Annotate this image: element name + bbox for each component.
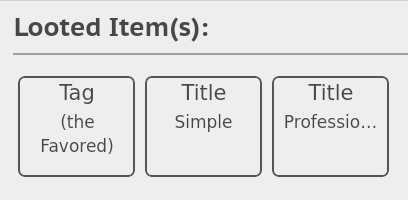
staticText: Favored) xyxy=(40,136,114,156)
button[interactable]: Title xyxy=(272,76,389,177)
staticText: Title xyxy=(181,81,227,105)
staticText: (the xyxy=(60,112,95,132)
staticText: Tag xyxy=(59,81,95,105)
staticText: Title xyxy=(308,81,354,105)
staticText: Professional xyxy=(280,112,381,132)
staticText: Looted Item(s): xyxy=(14,10,209,44)
button[interactable]: Tag xyxy=(18,76,135,177)
button[interactable]: Title xyxy=(145,76,262,177)
staticText: Simple xyxy=(174,112,233,132)
